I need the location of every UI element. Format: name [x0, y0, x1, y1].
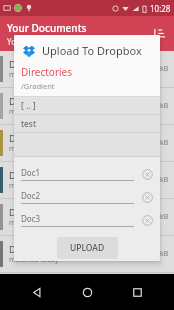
button[interactable]: Clear Doc3 [139, 212, 155, 228]
staticText: kB [160, 64, 169, 74]
staticText: modified today [9, 70, 59, 80]
staticText: Document 3 [9, 132, 61, 144]
button[interactable]: Sort [148, 24, 168, 44]
button[interactable]: Document 5 [0, 199, 174, 235]
button[interactable]: [ .. ] [14, 97, 160, 114]
button[interactable]: test [14, 115, 160, 132]
button[interactable]: Doc2 [21, 190, 134, 204]
button[interactable]: Clear Doc2 [139, 189, 155, 205]
staticText: kB [160, 249, 169, 259]
staticText: 10:28 [150, 3, 171, 14]
staticText: Document 6 [9, 243, 61, 255]
staticText: kB [160, 138, 169, 148]
staticText: kB [160, 175, 169, 185]
staticText: modified today [9, 218, 59, 228]
staticText: Doc2 [21, 190, 41, 201]
staticText: UPLOAD [70, 242, 105, 254]
staticText: Document 5 [9, 206, 61, 218]
staticText: [ .. ] [21, 100, 36, 112]
staticText: test [21, 118, 37, 130]
staticText: modified today [9, 255, 59, 265]
staticText: modified today [9, 107, 59, 117]
staticText: kB [160, 101, 169, 111]
staticText: Doc3 [21, 213, 41, 224]
button[interactable]: Document 2 [0, 88, 174, 124]
button[interactable]: Clear Doc1 [139, 166, 155, 182]
staticText: Your Workspace [7, 36, 68, 47]
staticText: Doc1 [21, 167, 41, 178]
staticText: /Gradient [21, 81, 55, 91]
button[interactable]: Document 4 [0, 162, 174, 198]
button[interactable]: UPLOAD [57, 237, 118, 259]
staticText: Your Documents [7, 21, 87, 35]
staticText: Document 2 [9, 95, 61, 107]
button[interactable]: Document 1 [0, 51, 174, 87]
button[interactable]: Document 6 [0, 236, 174, 272]
staticText: modified today [9, 181, 59, 191]
button[interactable]: Doc1 [21, 167, 134, 181]
staticText: Document 4 [9, 169, 61, 181]
staticText: kB [160, 212, 169, 222]
button[interactable]: Back [24, 279, 50, 305]
staticText: Directories [21, 65, 73, 79]
staticText: Upload To Dropbox [42, 43, 142, 58]
staticText: Document 1 [9, 58, 61, 70]
button[interactable]: Home [74, 279, 100, 305]
staticText: modified today [9, 144, 59, 154]
button[interactable]: Document 3 [0, 125, 174, 161]
button[interactable]: Recents [124, 279, 150, 305]
button[interactable]: Doc3 [21, 213, 134, 227]
